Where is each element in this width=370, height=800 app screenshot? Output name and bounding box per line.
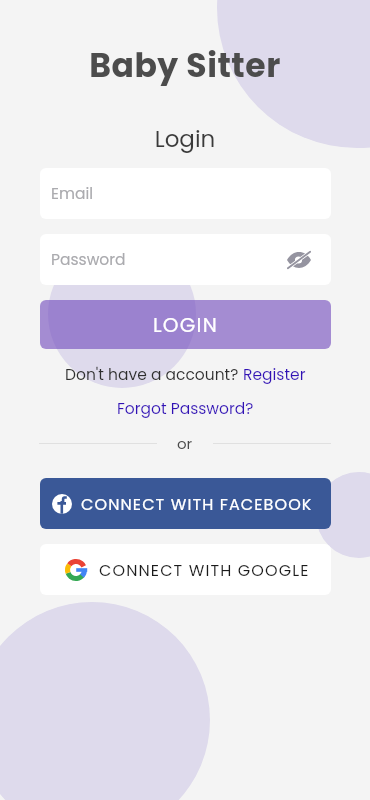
staticText: Login — [0, 123, 370, 155]
staticText: CONNECT WITH GOOGLE — [99, 559, 310, 581]
staticText: Forgot Password? — [117, 398, 254, 420]
staticText: Don't have a account? — [65, 364, 243, 386]
staticText: CONNECT WITH FACEBOOK — [81, 493, 313, 515]
button[interactable]: Show password — [281, 242, 317, 278]
staticText: Email — [51, 183, 94, 205]
button[interactable]: Email — [40, 168, 331, 219]
button[interactable]: CONNECT WITH FACEBOOK — [40, 478, 331, 529]
button[interactable]: Forgot Password? — [117, 398, 254, 420]
staticText: Baby Sitter — [0, 42, 370, 88]
button[interactable]: CONNECT WITH GOOGLE — [40, 544, 331, 595]
staticText: LOGIN — [153, 311, 218, 339]
button[interactable]: Password — [40, 234, 331, 285]
staticText: Password — [51, 249, 126, 271]
staticText: or — [177, 433, 193, 454]
button[interactable]: LOGIN — [40, 300, 331, 349]
button[interactable]: Register — [243, 364, 306, 386]
staticText: Register — [243, 364, 306, 386]
